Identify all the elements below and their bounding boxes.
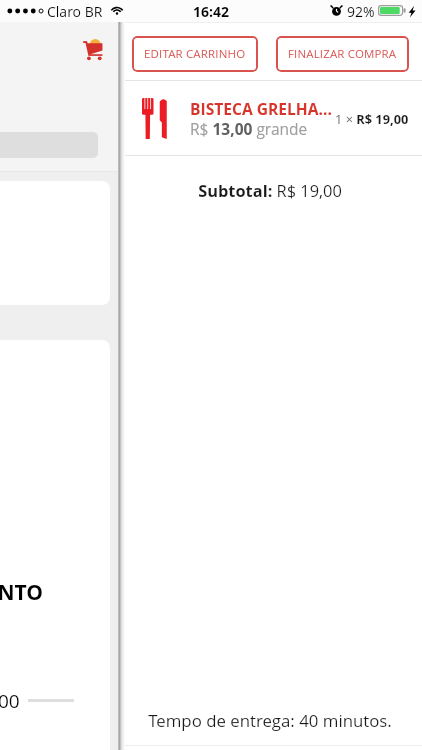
button[interactable]: Shopping cart: [82, 38, 104, 60]
staticText: EDITAR CARRINHO: [144, 46, 246, 62]
staticText: BISTECA GRELHA...: [190, 98, 350, 119]
button[interactable]: BISTECA GRELHA...: [118, 81, 422, 155]
staticText: 1 × R$ 19,00: [335, 110, 409, 127]
staticText: FINALIZAR COMPRA: [288, 46, 397, 62]
staticText: Tempo de entrega: 40 minutos.: [118, 709, 422, 732]
staticText: PAGAMENTO: [0, 578, 70, 607]
staticText: R$ 19,00: [0, 688, 64, 714]
staticText: 92%: [347, 2, 387, 21]
staticText: 16:42: [193, 2, 229, 21]
button[interactable]: FINALIZAR COMPRA: [276, 36, 409, 72]
staticText: Claro BR: [47, 2, 117, 21]
staticText: R$ 13,00 grande: [190, 118, 308, 139]
staticText: Subtotal: R$ 19,00: [118, 179, 422, 201]
button[interactable]: EDITAR CARRINHO: [132, 36, 258, 72]
